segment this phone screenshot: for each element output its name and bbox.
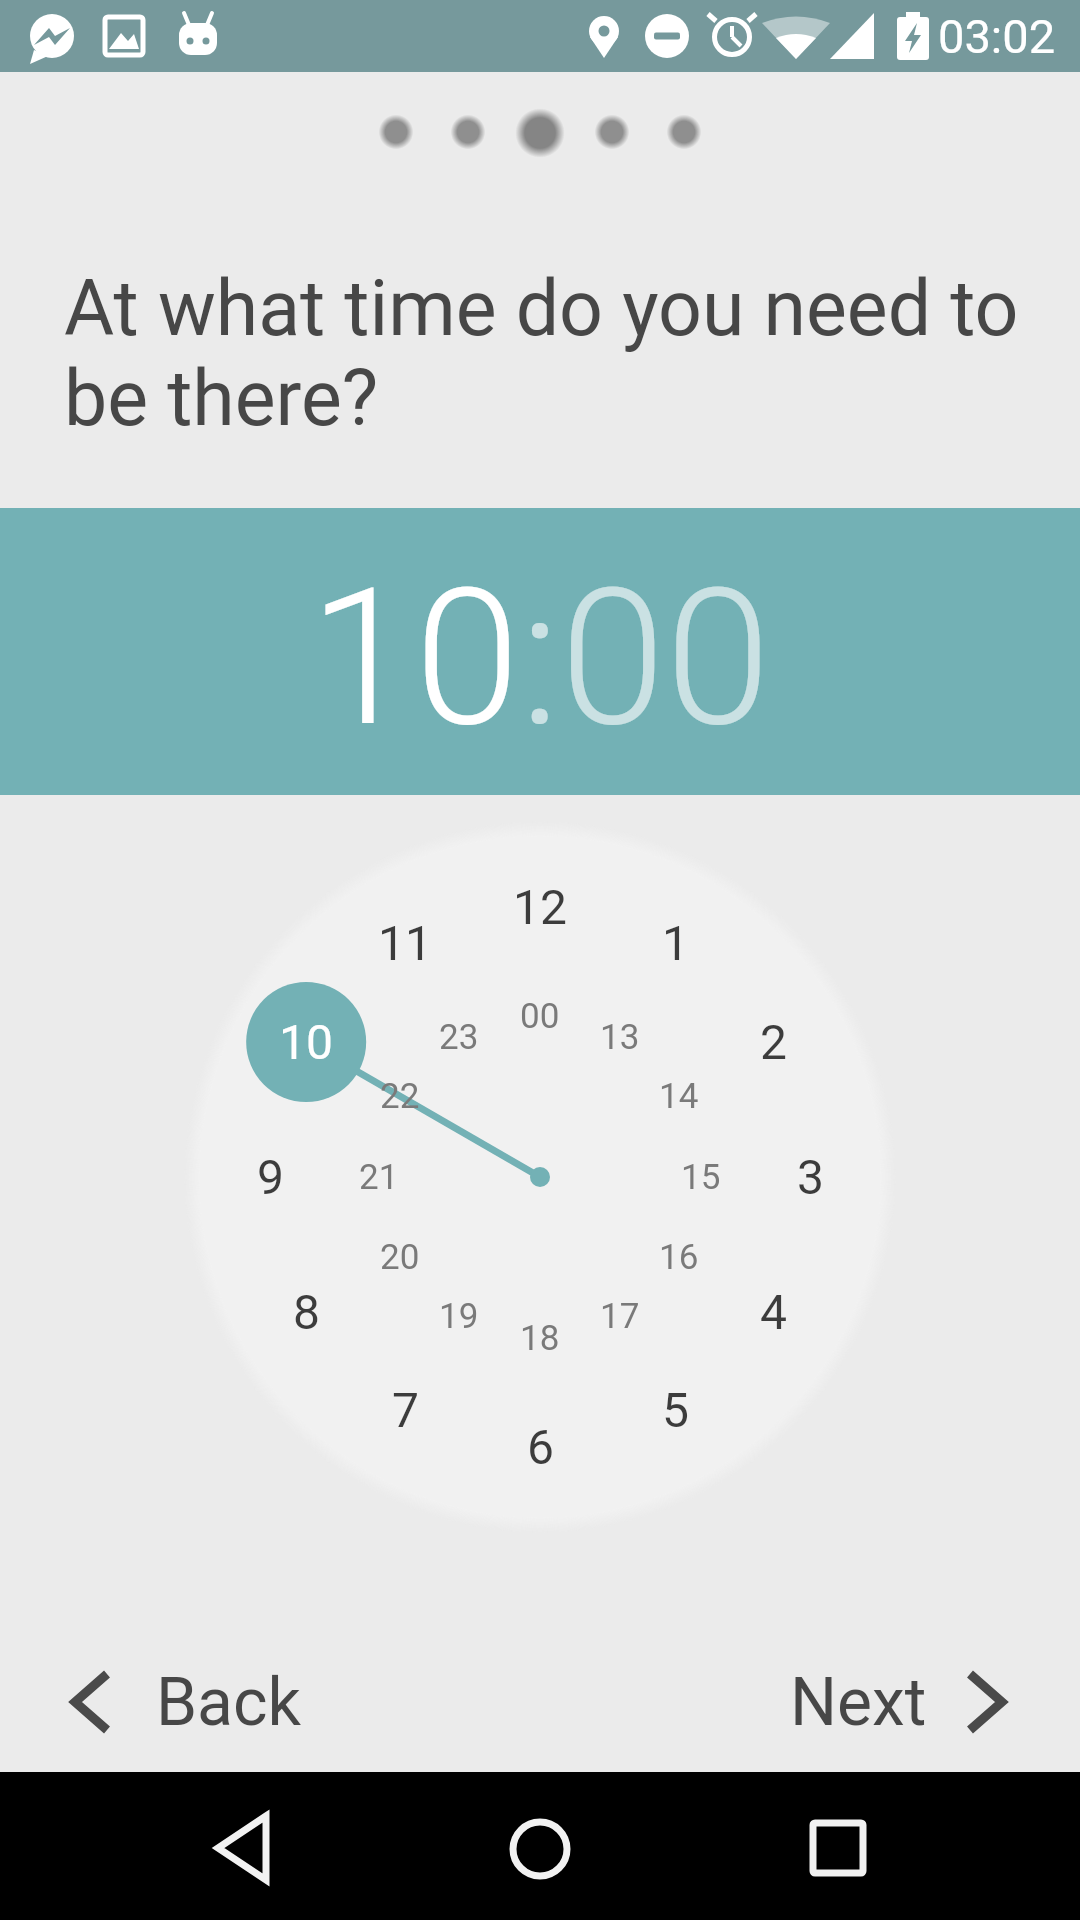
staticText: 10 [279,1014,333,1070]
staticText: 11 [378,915,432,971]
staticText: 17 [600,1296,640,1337]
button[interactable] [756,1772,924,1920]
staticText: 5 [662,1382,689,1438]
staticText: 20 [380,1237,420,1278]
staticText: At what time do you need to be there? [64,264,1019,444]
staticText: 10 [309,547,520,770]
staticText: 14 [659,1076,699,1117]
button[interactable]: Next [790,1660,1024,1744]
staticText: 1 [662,915,689,971]
staticText: 7 [392,1382,419,1438]
staticText: 12 [513,879,567,935]
staticText: 23 [439,1017,479,1058]
staticText: 13 [600,1017,640,1058]
button[interactable] [190,827,890,1527]
staticText: Next [790,1664,927,1741]
staticText: Back [156,1664,302,1741]
staticText: 6 [527,1419,554,1475]
staticText: 2 [760,1014,787,1070]
staticText: 16 [659,1237,699,1278]
staticText: 00 [520,996,560,1037]
staticText: 8 [293,1284,320,1340]
staticText: 18 [520,1318,560,1359]
button[interactable] [180,1772,348,1920]
staticText: 19 [439,1296,479,1337]
staticText: 3 [797,1149,824,1205]
button[interactable]: 10 [0,508,1080,795]
staticText: 15 [681,1157,721,1198]
staticText: 9 [257,1149,284,1205]
staticText: 22 [380,1076,420,1117]
staticText: 03:02 [938,9,1056,64]
staticText: :00 [520,547,771,770]
button[interactable] [456,1772,624,1920]
staticText: 4 [760,1284,787,1340]
staticText: 21 [359,1157,399,1198]
button[interactable]: Back [56,1660,336,1744]
